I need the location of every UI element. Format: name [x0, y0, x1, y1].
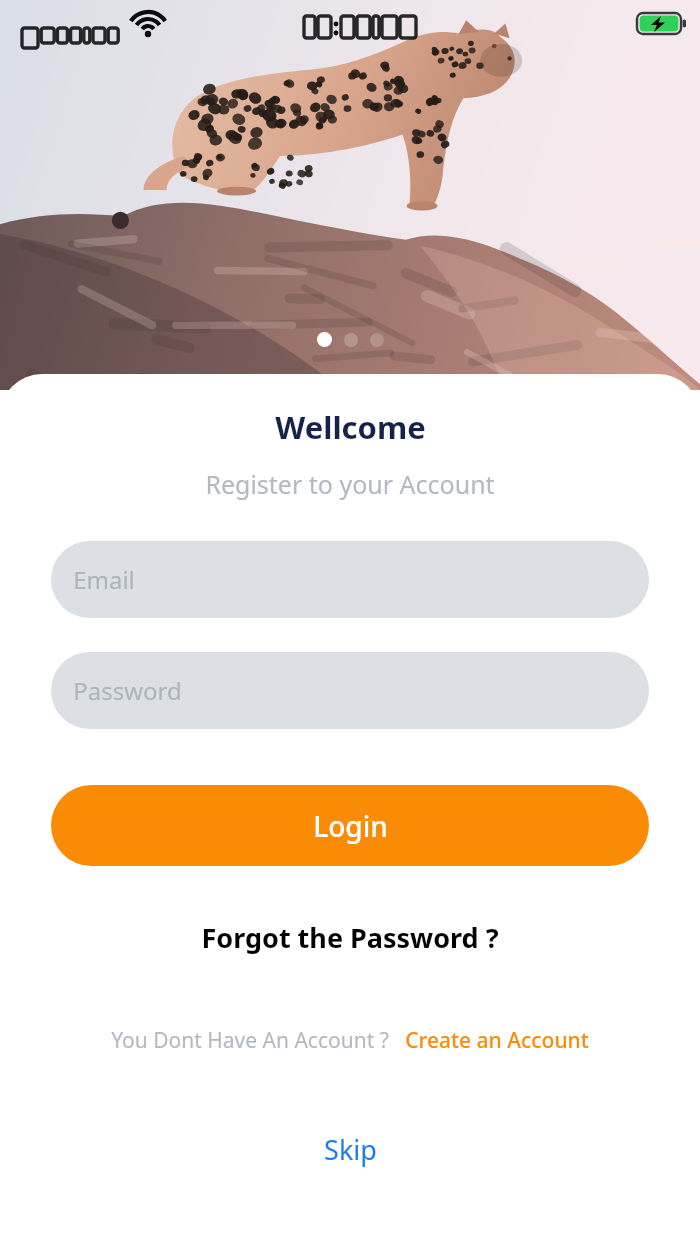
- button[interactable]: [317, 332, 332, 347]
- staticText: Password: [73, 674, 182, 707]
- button[interactable]: Email: [51, 541, 649, 618]
- staticText: Skip: [324, 1131, 377, 1168]
- staticText: Forgot the Password ?: [201, 919, 499, 956]
- button[interactable]: [344, 333, 358, 347]
- staticText: Email: [73, 563, 135, 596]
- button[interactable]: Forgot the Password ?: [0, 919, 700, 956]
- button[interactable]: [370, 333, 384, 347]
- staticText: Login: [313, 807, 388, 845]
- staticText: Create an Account: [405, 1026, 589, 1055]
- button[interactable]: Password: [51, 652, 649, 729]
- staticText: Wellcome: [275, 406, 426, 448]
- staticText: You Dont Have An Account ?: [111, 1026, 389, 1055]
- button[interactable]: Login: [51, 785, 649, 866]
- button[interactable]: Create an Account: [405, 1026, 589, 1055]
- staticText: Register to your Account: [205, 467, 495, 501]
- button[interactable]: Skip: [296, 1125, 405, 1174]
